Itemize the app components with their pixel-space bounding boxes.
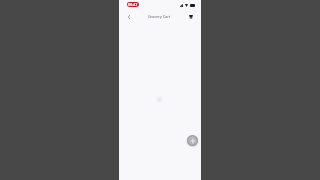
button[interactable]: Recording timer <box>127 2 139 7</box>
button[interactable]: Shopping cart <box>186 11 196 21</box>
button[interactable]: Add item <box>187 135 198 146</box>
button[interactable]: Back <box>124 12 134 22</box>
staticText: 00:47 <box>128 2 138 7</box>
staticText: Grocery Cart <box>118 14 200 19</box>
